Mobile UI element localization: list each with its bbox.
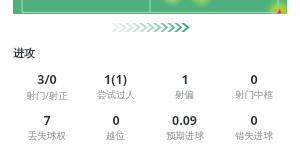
button[interactable]: 1(1) [81,71,150,101]
staticText: 预期进球 [166,130,204,142]
staticText: 越位 [106,130,125,142]
button[interactable]: 0 [219,112,288,142]
button[interactable]: 3/0 [12,71,81,102]
staticText: 1(1) [104,71,127,88]
staticText: 射门中框 [235,89,273,101]
staticText: 0 [112,112,120,129]
staticText: 丢失球权 [28,130,66,142]
button[interactable]: 0 [81,112,150,142]
button[interactable]: 7 [12,112,81,142]
staticText: 进攻 [13,46,35,60]
button[interactable]: 0.09 [150,112,219,142]
staticText: 3/0 [37,71,57,88]
staticText: 尝试过人 [97,89,135,101]
staticText: 0 [250,71,258,88]
staticText: 0 [250,112,258,129]
staticText: 射偏 [175,89,194,101]
button[interactable] [13,0,287,14]
staticText: 0.09 [172,112,197,129]
button[interactable]: 0 [219,71,288,101]
staticText: 错失进球 [235,130,273,142]
staticText: 7 [43,112,51,129]
button[interactable]: 1 [150,71,219,101]
staticText: 射门/射正 [26,89,68,102]
staticText: 1 [181,71,189,88]
